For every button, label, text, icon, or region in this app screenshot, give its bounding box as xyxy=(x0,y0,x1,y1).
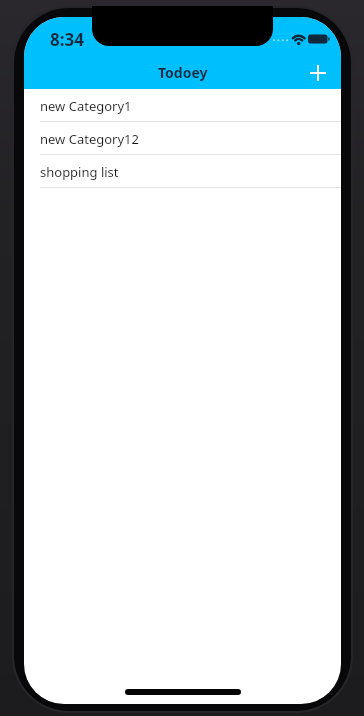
button[interactable]: new Category1 xyxy=(24,89,341,122)
button[interactable] xyxy=(302,57,334,89)
staticText: 8:34 xyxy=(50,28,84,51)
staticText: new Category1 xyxy=(40,97,132,115)
staticText: shopping list xyxy=(40,163,119,181)
staticText: new Category12 xyxy=(40,130,139,148)
staticText: Todoey xyxy=(158,63,208,82)
button[interactable]: new Category12 xyxy=(24,122,341,155)
button[interactable]: shopping list xyxy=(24,155,341,188)
